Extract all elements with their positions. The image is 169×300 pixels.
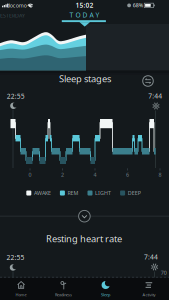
staticText: 22:55 xyxy=(7,92,25,101)
staticText: YESTERDAY xyxy=(0,12,25,19)
button[interactable]: Home xyxy=(16,280,27,297)
button[interactable]: Activity xyxy=(142,280,155,297)
button[interactable]: Sleep xyxy=(101,280,110,297)
button[interactable] xyxy=(78,209,91,223)
staticText: 2 xyxy=(61,171,64,178)
staticText: Resting heart rate xyxy=(46,232,122,245)
staticText: 7:44 xyxy=(144,253,158,261)
staticText: Sleep stages xyxy=(59,72,111,85)
staticText: T O D A Y xyxy=(69,11,99,19)
staticText: 6 xyxy=(126,171,129,178)
staticText: DEEP xyxy=(128,189,141,197)
staticText: 8 xyxy=(158,171,161,178)
staticText: docomo xyxy=(7,2,27,9)
staticText: 0 xyxy=(28,171,31,178)
staticText: 15:02 xyxy=(75,1,93,10)
staticText: Sleep xyxy=(101,292,110,297)
staticText: 68% xyxy=(133,2,143,9)
staticText: 7:44 xyxy=(148,91,162,100)
staticText: Readiness xyxy=(55,292,72,297)
button[interactable]: Readiness xyxy=(55,280,72,297)
staticText: REM xyxy=(67,189,78,197)
staticText: LIGHT xyxy=(95,189,111,197)
button[interactable]: YESTERDAY xyxy=(0,12,25,19)
staticText: Activity xyxy=(142,292,155,297)
button[interactable]: T O D A Y xyxy=(69,11,99,19)
staticText: AWAKE xyxy=(34,189,51,197)
staticText: 4 xyxy=(93,171,96,178)
staticText: 70 xyxy=(161,269,167,276)
staticText: Home xyxy=(16,292,27,297)
button[interactable] xyxy=(142,75,154,87)
staticText: 22:55 xyxy=(7,253,25,262)
